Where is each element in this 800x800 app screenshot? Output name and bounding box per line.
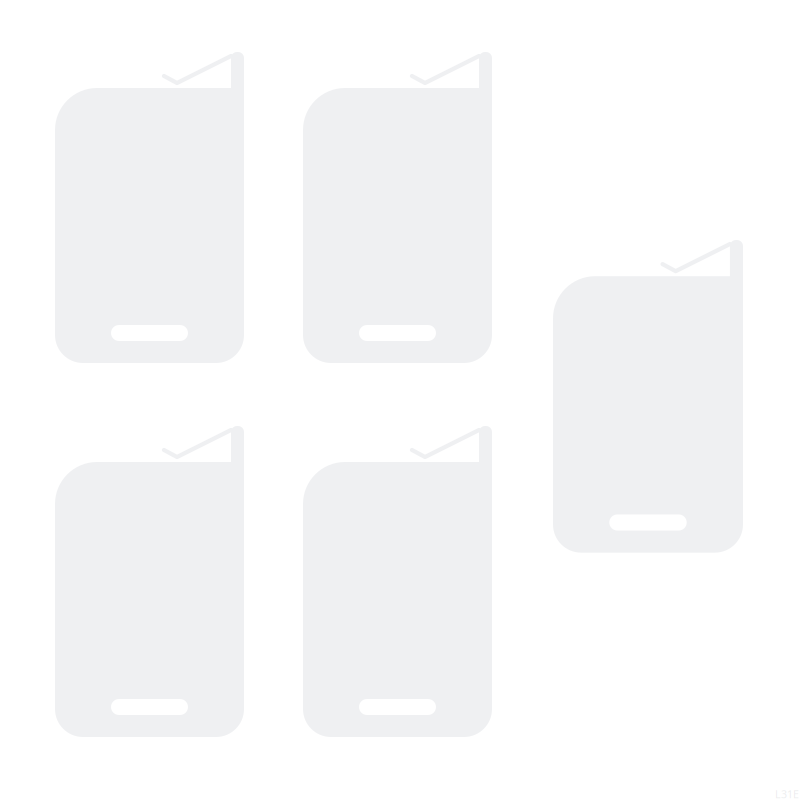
button[interactable]: Screen protector 5 <box>303 426 492 737</box>
button[interactable]: Screen protector 2 <box>303 52 492 363</box>
button[interactable]: Screen protector 1 <box>55 52 244 363</box>
button[interactable]: Screen protector 3 <box>553 240 743 553</box>
button[interactable]: Screen protector 4 <box>55 426 244 737</box>
staticText: L31E <box>775 787 799 800</box>
